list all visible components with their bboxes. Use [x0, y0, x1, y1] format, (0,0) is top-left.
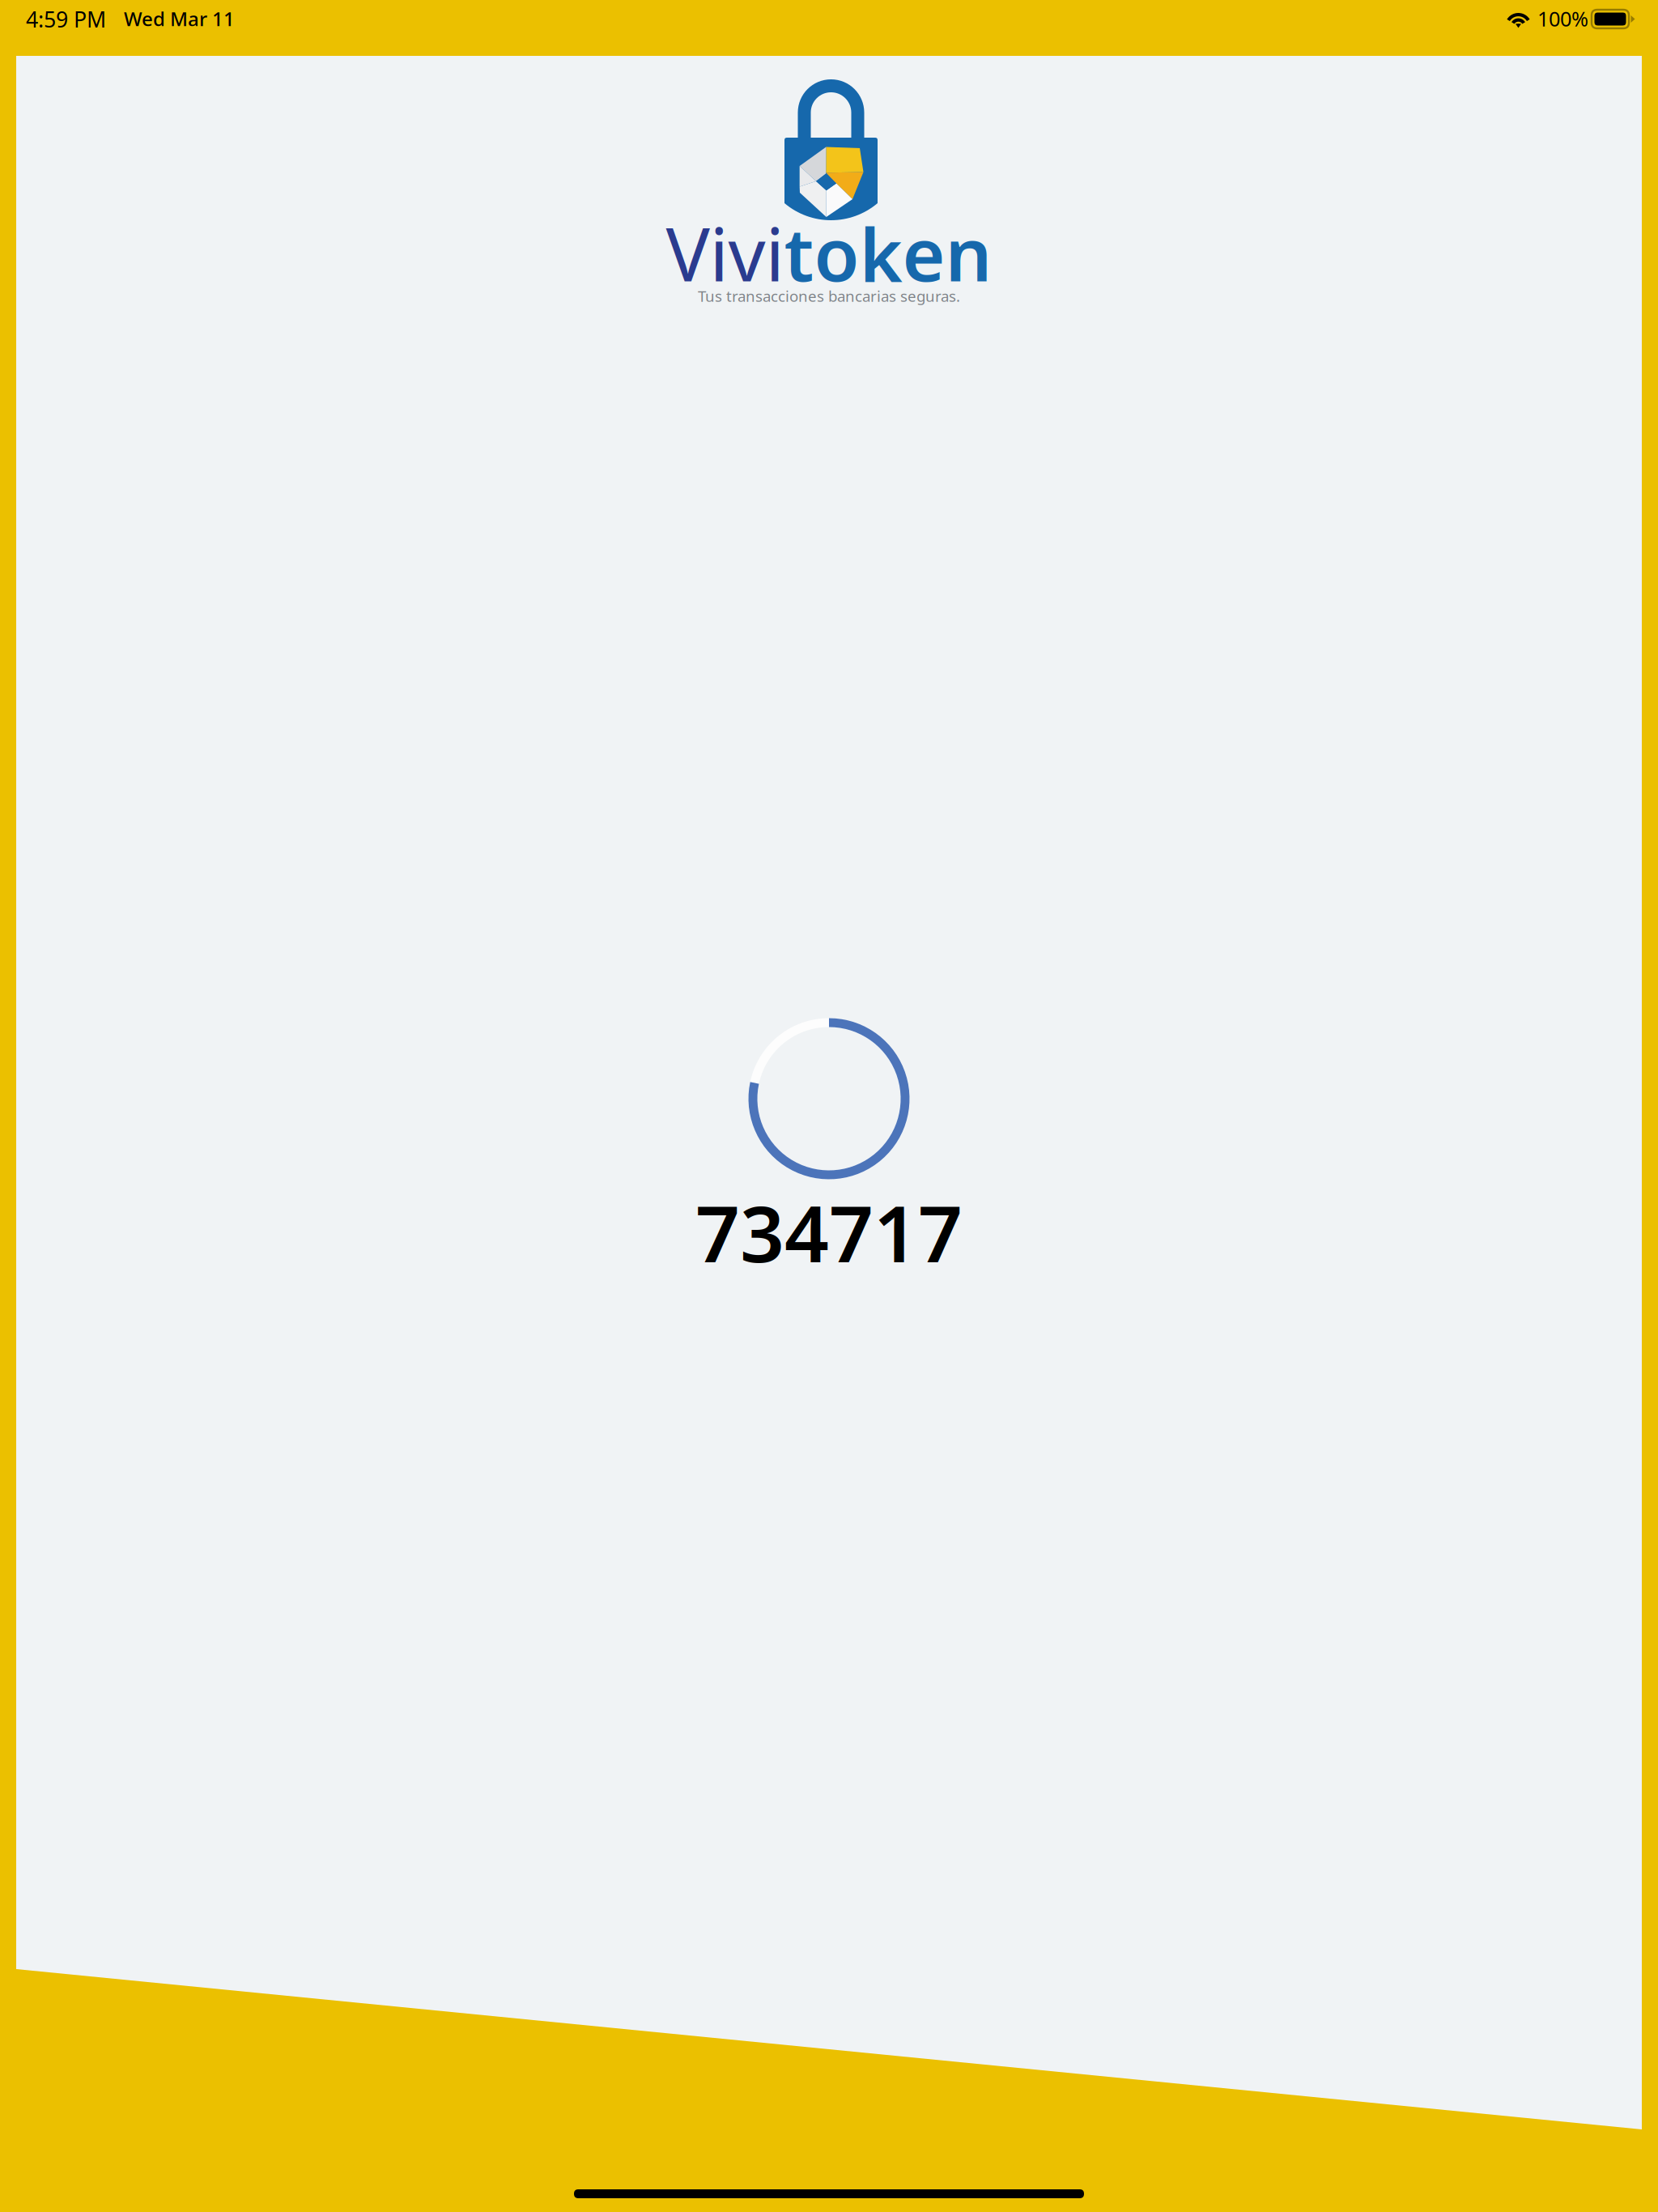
staticText: 100%: [1537, 5, 1588, 32]
staticText: 4:59 PM: [26, 5, 106, 34]
staticText: 734717: [695, 1180, 963, 1284]
staticText: token: [784, 204, 992, 302]
staticText: Wed Mar 11: [124, 6, 235, 31]
staticText: Vivi: [666, 204, 784, 302]
staticText: Tus transacciones bancarias seguras.: [698, 286, 960, 306]
